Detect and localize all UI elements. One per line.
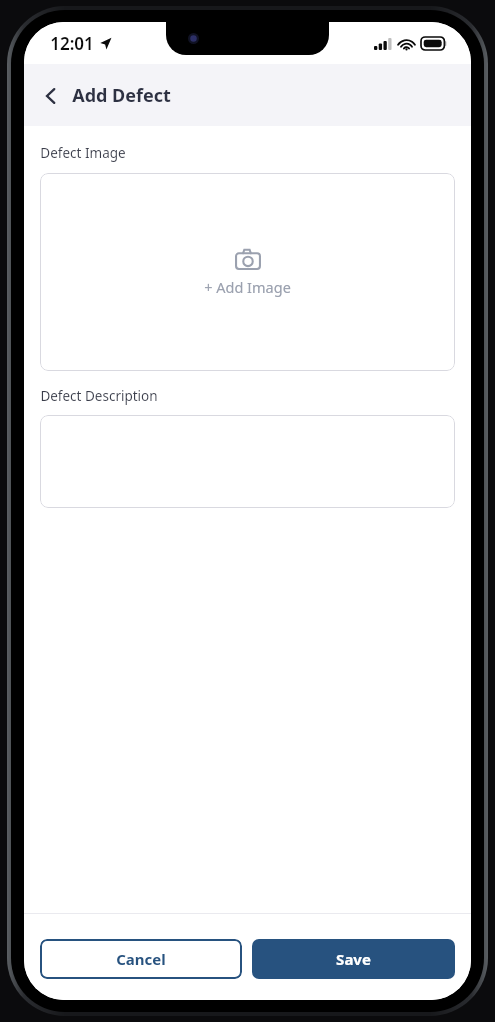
button[interactable]: Back — [30, 77, 181, 114]
button[interactable]: Save — [252, 939, 455, 979]
staticText: Add Defect — [72, 83, 171, 108]
staticText: Save — [336, 949, 371, 969]
staticText: 12:01 — [50, 32, 94, 55]
staticText: Defect Image — [40, 144, 126, 162]
other: Back — [40, 85, 62, 107]
button[interactable]: Defect description input — [40, 415, 455, 508]
button[interactable]: Cancel — [40, 939, 242, 979]
staticText: + Add Image — [204, 277, 291, 297]
staticText: Cancel — [116, 949, 166, 969]
staticText: Defect Description — [40, 387, 158, 405]
button[interactable]: Add Image — [40, 173, 455, 371]
